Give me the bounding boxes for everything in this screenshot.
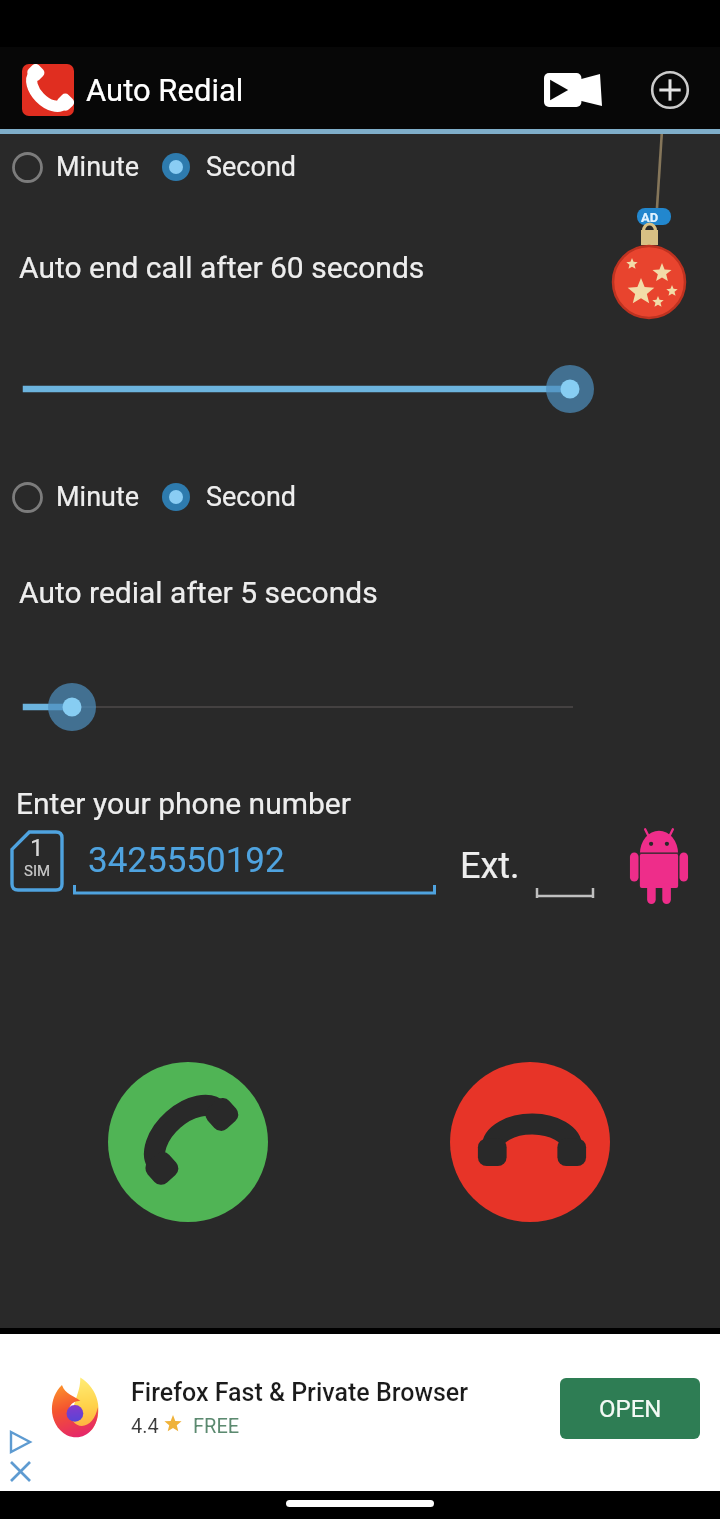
button[interactable] [0, 672, 720, 742]
button[interactable]: End call [450, 1062, 610, 1222]
button[interactable]: Firefox [46, 1372, 106, 1440]
staticText: Second [206, 481, 297, 513]
button[interactable]: 3425550192 [73, 840, 436, 897]
staticText: Second [206, 151, 297, 183]
staticText: Minute [56, 151, 140, 183]
staticText: Auto redial after 5 seconds [19, 575, 378, 610]
staticText: OPEN [599, 1395, 662, 1423]
staticText: 3425550192 [88, 840, 285, 881]
button[interactable]: Add [632, 52, 708, 128]
staticText: Enter your phone number [16, 786, 351, 821]
staticText: 1 [30, 834, 44, 862]
staticText: AD [641, 210, 659, 225]
button[interactable]: Minute [12, 151, 140, 183]
button[interactable]: Second [161, 481, 297, 513]
button[interactable]: Video call [535, 52, 611, 128]
button[interactable]: Second [161, 151, 297, 183]
staticText: Firefox Fast & Private Browser [131, 1378, 469, 1407]
button[interactable]: Call [108, 1062, 268, 1222]
button[interactable] [535, 850, 597, 898]
staticText: Auto Redial [86, 72, 244, 108]
button[interactable]: SIM 1 [10, 830, 64, 892]
button[interactable]: App icon [22, 64, 74, 116]
button[interactable]: OPEN [560, 1378, 700, 1439]
button[interactable]: Minute [12, 481, 140, 513]
staticText: Minute [56, 481, 140, 513]
staticText: Ext. [460, 845, 520, 887]
staticText: FREE [193, 1414, 240, 1437]
staticText: SIM [24, 862, 51, 880]
button[interactable] [0, 354, 720, 424]
button[interactable]: Advertisement [610, 130, 700, 320]
staticText: 4.4 [131, 1414, 159, 1437]
staticText: Auto end call after 60 seconds [19, 250, 425, 285]
